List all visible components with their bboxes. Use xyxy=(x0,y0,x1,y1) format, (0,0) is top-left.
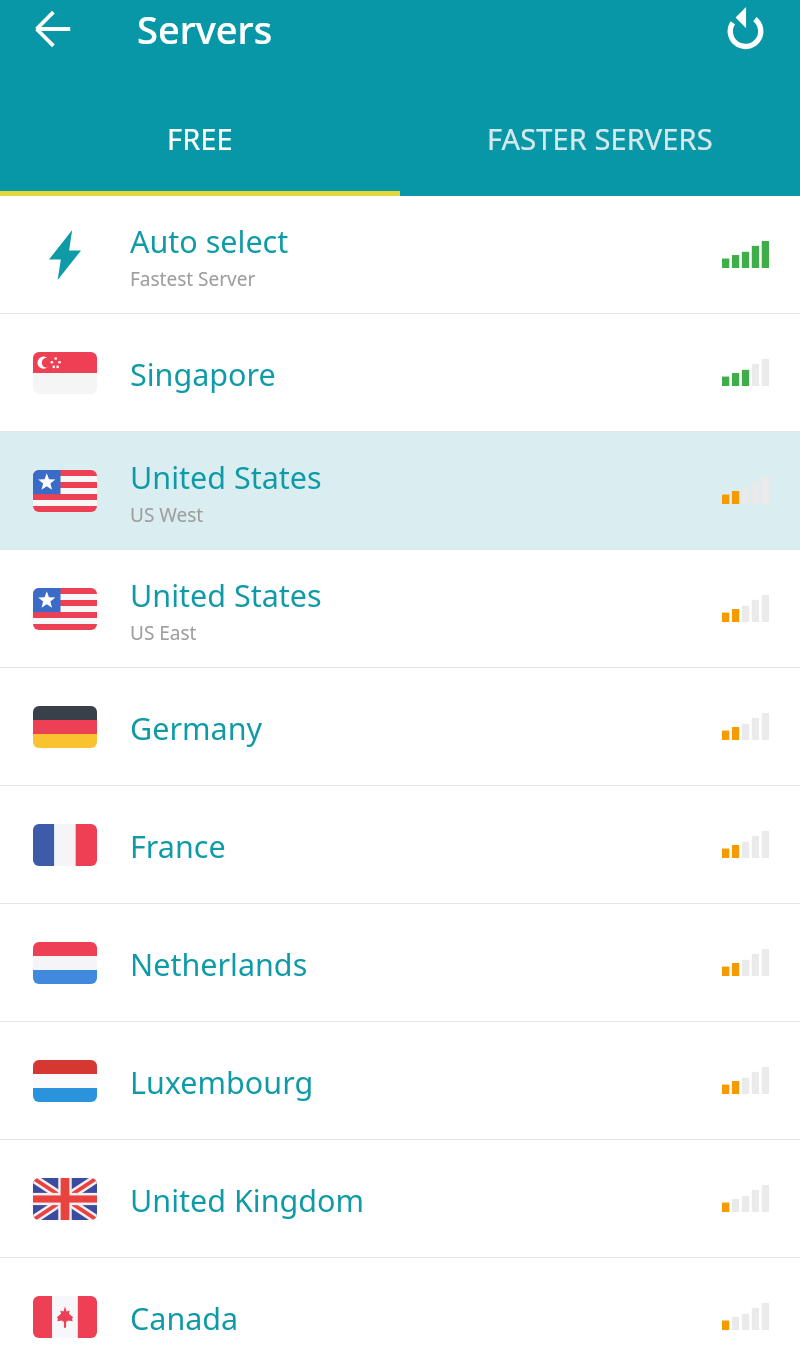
button[interactable]: France xyxy=(0,786,800,903)
staticText: Servers xyxy=(137,3,273,55)
button[interactable]: Auto select xyxy=(0,196,800,313)
staticText: Singapore xyxy=(130,353,276,395)
button[interactable]: United Kingdom xyxy=(0,1140,800,1257)
button[interactable]: United States xyxy=(0,432,800,549)
staticText: United States xyxy=(130,574,322,616)
staticText: US West xyxy=(130,502,204,528)
staticText: Auto select xyxy=(130,220,289,262)
staticText: Germany xyxy=(130,707,263,749)
button[interactable]: FREE xyxy=(0,80,400,196)
staticText: FASTER SERVERS xyxy=(487,119,713,158)
button[interactable]: Refresh xyxy=(714,0,776,55)
staticText: US East xyxy=(130,620,197,646)
button[interactable]: Canada xyxy=(0,1258,800,1350)
button[interactable]: Back xyxy=(20,0,86,58)
staticText: France xyxy=(130,825,226,867)
staticText: United States xyxy=(130,456,322,498)
staticText: United Kingdom xyxy=(130,1179,364,1221)
staticText: FREE xyxy=(167,119,233,158)
button[interactable]: Luxembourg xyxy=(0,1022,800,1139)
staticText: Netherlands xyxy=(130,943,308,985)
button[interactable]: Germany xyxy=(0,668,800,785)
button[interactable]: FASTER SERVERS xyxy=(400,80,800,196)
staticText: Canada xyxy=(130,1297,239,1339)
button[interactable]: United States xyxy=(0,550,800,667)
staticText: Fastest Server xyxy=(130,266,256,292)
staticText: Luxembourg xyxy=(130,1061,314,1103)
button[interactable]: Netherlands xyxy=(0,904,800,1021)
button[interactable]: Singapore xyxy=(0,314,800,431)
